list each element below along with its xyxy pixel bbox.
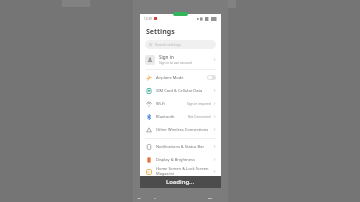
staticText: Wi-Fi <box>156 101 166 106</box>
button[interactable]: Airplane mode toggle <box>207 75 216 80</box>
staticText: Bluetooth <box>156 114 175 119</box>
staticText: Other Wireless Connections <box>156 127 209 132</box>
staticText: Sign in required <box>187 102 211 106</box>
button[interactable]: Display & Brightness <box>140 153 221 166</box>
staticText: Loading... <box>166 178 195 186</box>
staticText: Sign in to use account <box>159 61 192 65</box>
staticText: Home Screen & Lock Screen Magazine <box>156 166 209 176</box>
button[interactable]: Bluetooth <box>140 110 221 123</box>
button[interactable]: Done <box>204 193 228 202</box>
staticText: Display & Brightness <box>156 157 195 162</box>
button[interactable]: Search settings <box>145 40 216 49</box>
staticText: Cancel <box>137 196 156 199</box>
staticText: SIM Card & Cellular Data <box>156 88 203 93</box>
button[interactable]: Wi-Fi <box>140 97 221 110</box>
button[interactable]: Cancel <box>133 193 160 202</box>
button[interactable]: Notifications & Status Bar <box>140 140 221 153</box>
staticText: Sign in <box>159 54 174 60</box>
button[interactable]: Home Screen & Lock Screen Magazine <box>140 166 221 176</box>
staticText: 12:30 <box>144 17 152 21</box>
button[interactable]: SIM Card & Cellular Data <box>140 84 221 97</box>
staticText: Done <box>208 196 224 199</box>
button[interactable]: Sign in <box>140 52 221 67</box>
staticText: Airplane Mode <box>156 75 184 80</box>
staticText: Not Connected <box>188 115 211 119</box>
staticText: Settings <box>146 27 175 37</box>
button[interactable]: Other Wireless Connections <box>140 123 221 136</box>
button[interactable]: Airplane Mode <box>140 71 221 84</box>
staticText: Search settings <box>155 42 181 47</box>
button[interactable]: Loading... <box>140 176 221 188</box>
staticText: Notifications & Status Bar <box>156 144 205 149</box>
